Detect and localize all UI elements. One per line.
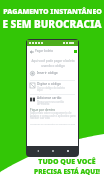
staticText: Inserir código <box>37 71 58 75</box>
staticText: Use o código do boleto <box>37 86 66 90</box>
staticText: Aqui você pode pagar o boleto <box>31 59 75 63</box>
staticText: facilitar sua vida <box>30 116 50 120</box>
staticText: E SEM BUROCRACIA <box>2 17 102 31</box>
button[interactable]: Home <box>48 146 57 155</box>
staticText: Fique por dentro <box>30 108 56 112</box>
staticText: boletos e como usar o aplicativo para <box>30 114 76 118</box>
staticText: Saiba mais sobre o pagamento de <box>30 111 72 115</box>
staticText: Pagar boleto <box>35 49 54 53</box>
button[interactable]: Back <box>30 50 34 54</box>
staticText: Pague com seu cartão <box>37 100 64 104</box>
button[interactable]: Digitar o código <box>27 80 78 93</box>
staticText: de crédito <box>37 102 50 106</box>
staticText: Consulte as condições do serviço no site… <box>30 122 79 125</box>
staticText: PAGAMENTO INSTANTÂNEO <box>3 7 102 17</box>
button[interactable]: Back <box>33 146 42 155</box>
staticText: PRECISA ESTÁ AQUI! <box>34 167 100 176</box>
button[interactable]: Recent apps <box>63 146 72 155</box>
staticText: TUDO QUE VOCÊ <box>38 157 96 167</box>
staticText: usando o código <box>41 64 65 68</box>
staticText: Adicionar cartão <box>37 96 62 100</box>
staticText: aqui <box>37 88 43 92</box>
button[interactable]: Inserir código <box>27 67 78 79</box>
staticText: Digitar o código <box>37 82 61 86</box>
button[interactable]: Adicionar cartão <box>27 94 78 107</box>
